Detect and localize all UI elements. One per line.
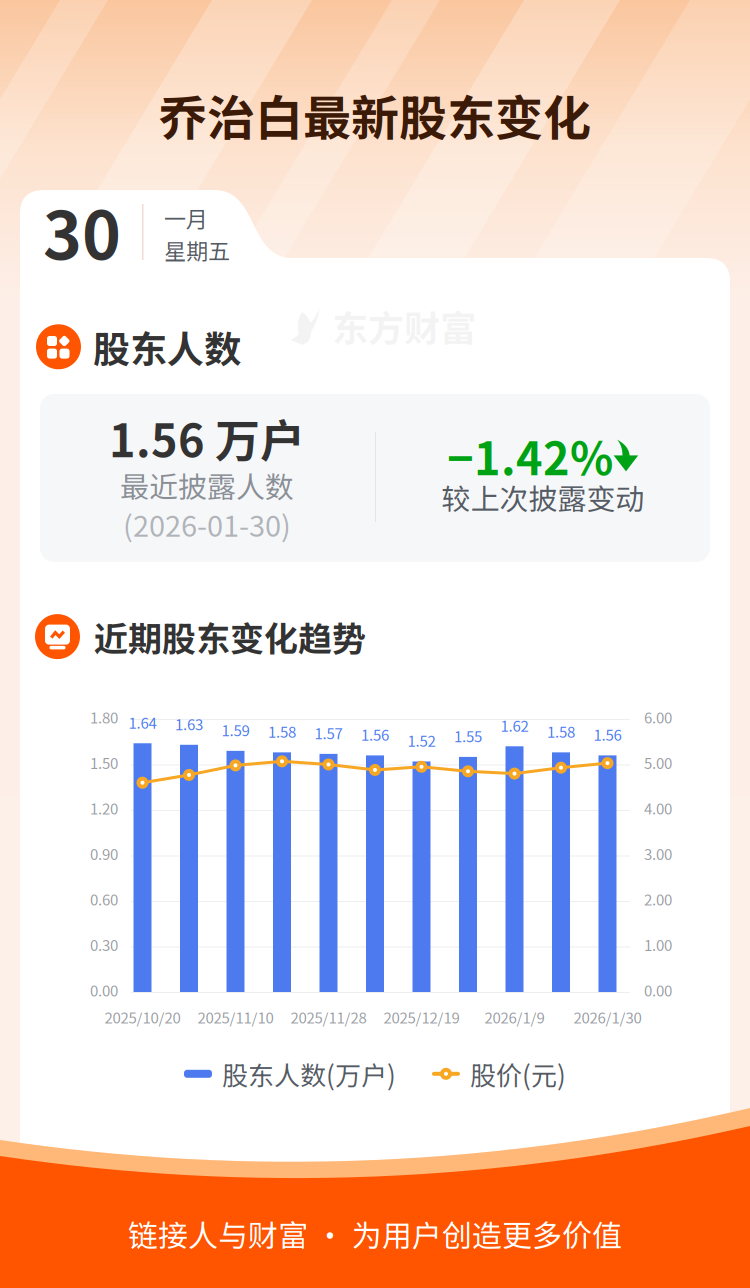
staticText: 一月	[164, 202, 208, 234]
staticText: 5.00	[644, 751, 672, 773]
staticText: 1.20	[90, 797, 118, 819]
staticText: 股价(元)	[470, 1055, 566, 1093]
staticText: 2.00	[644, 888, 672, 910]
staticText: 1.56	[593, 723, 621, 745]
staticText: 1.63	[175, 713, 203, 734]
staticText: 1.58	[547, 720, 575, 742]
staticText: 较上次披露变动	[441, 476, 644, 518]
staticText: 1.62	[500, 714, 528, 736]
staticText: −1.42%	[447, 423, 613, 488]
staticText: 股东人数(万户)	[222, 1055, 396, 1093]
staticText: 1.64	[128, 711, 156, 733]
staticText: 1.55	[454, 725, 482, 747]
staticText: (2026-01-30)	[123, 503, 291, 545]
staticText: 0.90	[90, 842, 118, 864]
staticText: 1.80	[90, 706, 118, 728]
staticText: 近期股东变化趋势	[94, 612, 366, 661]
staticText: 1.58	[268, 720, 296, 742]
staticText: 1.52	[407, 729, 435, 751]
staticText: 3.00	[644, 842, 672, 864]
staticText: 星期五	[164, 234, 230, 266]
staticText: 6.00	[644, 706, 672, 728]
staticText: 0.60	[90, 888, 118, 910]
staticText: 股东人数	[93, 320, 241, 374]
staticText: 乔治白最新股东变化	[159, 80, 591, 149]
staticText: 1.59	[221, 719, 249, 741]
staticText: 1.56	[361, 723, 389, 745]
staticText: 链接人与财富 · 为用户创造更多价值	[128, 1212, 622, 1255]
staticText: 2026/1/9	[484, 1006, 544, 1028]
staticText: 2025/12/19	[383, 1006, 459, 1028]
staticText: 4.00	[644, 797, 672, 819]
staticText: 2025/11/10	[197, 1006, 273, 1028]
staticText: 1.50	[90, 751, 118, 773]
staticText: 1.56 万户	[109, 405, 305, 470]
staticText: 0.30	[90, 933, 118, 955]
staticText: 2025/10/20	[104, 1006, 180, 1028]
staticText: 1.57	[314, 722, 342, 744]
staticText: 30	[43, 183, 121, 279]
staticText: 0.00	[90, 979, 118, 1001]
staticText: 0.00	[644, 979, 672, 1001]
staticText: 最近披露人数	[120, 464, 294, 506]
staticText: 2026/1/30	[573, 1006, 641, 1028]
staticText: 2025/11/28	[290, 1006, 366, 1028]
staticText: 东方财富	[332, 300, 476, 352]
staticText: 1.00	[644, 933, 672, 955]
